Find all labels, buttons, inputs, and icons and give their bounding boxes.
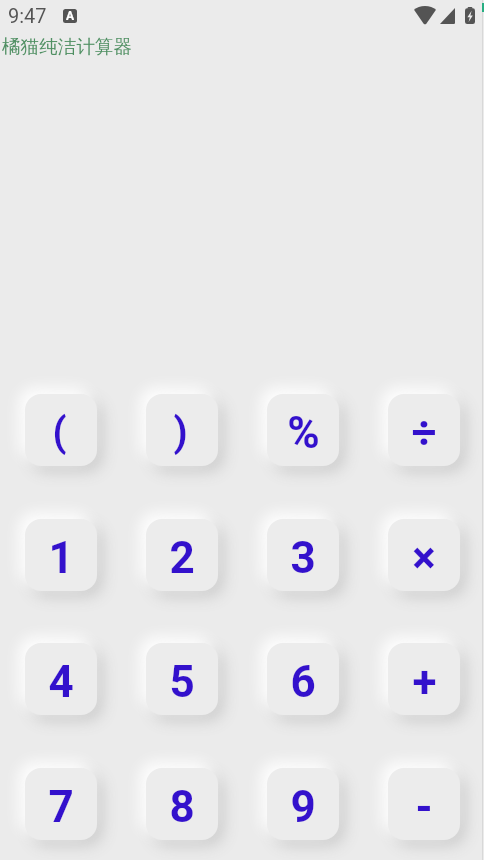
other: Signal	[440, 7, 455, 24]
staticText: 5	[169, 656, 195, 708]
staticText: A	[66, 9, 75, 23]
staticText: 4	[48, 656, 74, 708]
staticText: )	[173, 409, 188, 456]
button[interactable]: 1	[25, 519, 97, 591]
staticText: 6	[290, 656, 316, 708]
button[interactable]: +	[388, 643, 460, 715]
button[interactable]: 9	[267, 768, 339, 840]
staticText: (	[52, 409, 67, 456]
other: Battery	[465, 7, 475, 24]
button[interactable]: 3	[267, 519, 339, 591]
button[interactable]: -	[388, 768, 460, 840]
staticText: 9	[290, 781, 316, 833]
button[interactable]: ×	[388, 519, 460, 591]
button[interactable]: %	[267, 394, 339, 466]
staticText: 1	[48, 532, 74, 584]
button[interactable]: 7	[25, 768, 97, 840]
staticText: 橘猫纯洁计算器	[2, 35, 133, 58]
staticText: %	[287, 407, 320, 459]
button[interactable]: 8	[146, 768, 218, 840]
button[interactable]: ÷	[388, 394, 460, 466]
button[interactable]: )	[146, 394, 218, 466]
staticText: ×	[412, 532, 436, 584]
button[interactable]: 6	[267, 643, 339, 715]
other: Wi-Fi	[414, 7, 436, 24]
staticText: -	[415, 781, 433, 833]
button[interactable]: (	[25, 394, 97, 466]
staticText: 7	[48, 781, 74, 833]
staticText: +	[412, 656, 437, 708]
button[interactable]: 4	[25, 643, 97, 715]
button[interactable]: 5	[146, 643, 218, 715]
button[interactable]: 2	[146, 519, 218, 591]
staticText: 8	[169, 781, 195, 833]
staticText: 3	[290, 532, 316, 584]
staticText: 9:47	[8, 4, 47, 27]
staticText: 2	[169, 532, 195, 584]
staticText: ÷	[411, 407, 437, 459]
